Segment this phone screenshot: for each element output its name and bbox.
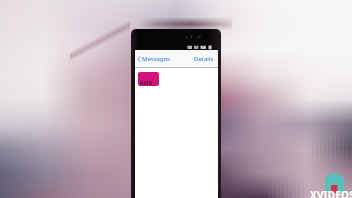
button[interactable]: Details xyxy=(194,55,214,63)
button[interactable]: Messages xyxy=(137,55,170,63)
staticText: XVIDEOS xyxy=(310,188,352,198)
staticText: Messages xyxy=(142,55,170,63)
button[interactable]: Tue xyxy=(138,72,159,86)
staticText: Tue xyxy=(140,74,147,79)
staticText: #216 buy xyxy=(140,80,159,86)
staticText: Details xyxy=(194,55,214,63)
